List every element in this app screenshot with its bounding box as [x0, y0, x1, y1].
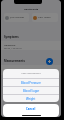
staticText: Cancel — [26, 107, 36, 111]
staticText: New Measurement — [21, 72, 41, 75]
staticText: Capt. Health — [38, 16, 51, 19]
button[interactable]: Blood Pressure — [3, 79, 59, 86]
button[interactable]: Blood Sugar — [3, 87, 59, 94]
staticText: Blood Sugar — [23, 89, 40, 93]
button[interactable]: Cancel — [3, 104, 59, 117]
button[interactable]: Weight — [3, 95, 59, 102]
staticText: Headache — [4, 43, 16, 46]
staticText: John Kennedy — [10, 16, 25, 19]
button[interactable]: Add — [46, 58, 53, 65]
button[interactable]: John Kennedy — [4, 13, 29, 22]
staticText: Blood Pressure — [21, 81, 41, 85]
staticText: Measurements — [4, 59, 25, 63]
button[interactable]: Headache — [1, 41, 61, 50]
staticText: Health Data — [24, 7, 39, 10]
button[interactable]: Capt. Health — [32, 13, 58, 22]
staticText: Feb 28, 1:30:00 PM — [4, 47, 22, 50]
staticText: Weight — [26, 97, 36, 101]
staticText: Symptoms — [4, 35, 19, 39]
